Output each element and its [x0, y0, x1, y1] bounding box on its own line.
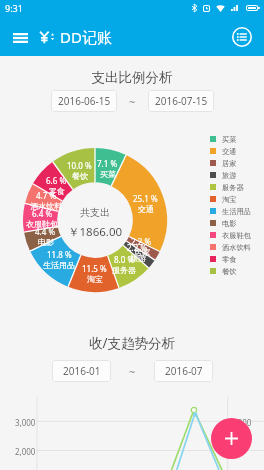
button[interactable]: 菜单 [7, 24, 34, 51]
staticText: 25.1 % [133, 193, 158, 204]
staticText: 居家 [222, 159, 237, 168]
staticText: 服务器 [222, 183, 244, 192]
staticText: 10.0 % [67, 160, 92, 171]
staticText: 7.1 % [97, 158, 118, 169]
staticText: 2016-01 [63, 364, 101, 378]
staticText: 9:31 [5, 2, 23, 14]
staticText: 2.2 % [131, 236, 152, 247]
staticText: 居家 [134, 247, 150, 256]
staticText: 淘宝 [87, 274, 103, 283]
staticText: 旅游 [222, 171, 237, 180]
staticText: 衣服鞋包 [222, 231, 251, 240]
staticText: 零食 [49, 186, 65, 195]
staticText: 旅游 [130, 253, 146, 262]
staticText: 支出比例分析 [0, 69, 264, 86]
staticText: DD记账 [60, 27, 112, 47]
staticText: 电影 [222, 219, 237, 228]
staticText: ~ [129, 364, 136, 379]
staticText: 2016-07-15 [155, 94, 208, 108]
staticText: 生活用品 [222, 207, 251, 216]
staticText: 酒水饮料 [222, 243, 251, 252]
button[interactable]: 2016-01 [52, 360, 111, 382]
staticText: 2.2 % [127, 242, 148, 253]
button[interactable]: 账单列表 [232, 27, 252, 47]
staticText: ~ [129, 94, 136, 109]
staticText: 交通 [222, 147, 237, 156]
staticText: 11.5 % [82, 263, 107, 274]
button[interactable]: 2016-06-15 [51, 90, 117, 112]
staticText: 交通 [138, 204, 154, 213]
staticText: 11.8 % [47, 249, 72, 260]
button[interactable]: 2016-07 [154, 360, 213, 382]
staticText: 衣服鞋包 [26, 219, 58, 228]
staticText: 6.6 % [46, 175, 67, 186]
staticText: 2016-07 [165, 364, 203, 378]
staticText: 淘宝 [222, 195, 237, 204]
staticText: 买菜 [222, 135, 237, 144]
staticText: 餐饮 [72, 171, 88, 180]
staticText: 2,000 [15, 446, 36, 457]
staticText: 2016-06-15 [58, 94, 111, 108]
staticText: 6.4 % [32, 208, 53, 219]
staticText: 服务器 [112, 265, 136, 274]
staticText: 电影 [38, 237, 54, 246]
button[interactable]: 添加记账 [211, 418, 252, 459]
button[interactable]: 2016-07-15 [148, 90, 214, 112]
staticText: 买菜 [100, 169, 116, 178]
staticText: 酒水饮料 [30, 201, 62, 210]
staticText: 3,000 [15, 417, 36, 428]
staticText: 4.4 % [35, 226, 56, 237]
staticText: 8.0 % [114, 254, 135, 265]
staticText: 3,000 [231, 417, 252, 428]
staticText: ￥1866.00 [68, 224, 123, 240]
staticText: 餐饮 [222, 267, 237, 276]
staticText: 共支出 [80, 206, 110, 219]
staticText: 4.7 % [36, 190, 57, 201]
staticText: 生活用品 [43, 260, 75, 269]
staticText: 零食 [222, 255, 237, 264]
staticText: 收/支趋势分析 [0, 334, 264, 352]
